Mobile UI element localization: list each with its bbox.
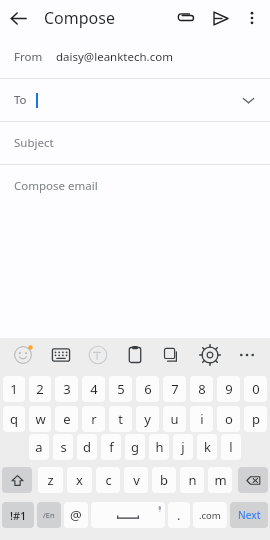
staticText: Subject <box>14 135 54 151</box>
button[interactable]: Shift <box>2 467 32 493</box>
button[interactable]: Expand recipients <box>236 88 260 112</box>
button[interactable]: q <box>3 406 25 432</box>
button[interactable]: Compose email <box>0 165 270 207</box>
button[interactable]: j <box>173 434 193 460</box>
button[interactable]: y <box>136 406 159 432</box>
staticText: g <box>131 438 139 456</box>
button[interactable]: c <box>96 467 120 493</box>
button[interactable]: h <box>149 434 169 460</box>
staticText: s <box>60 438 67 456</box>
button[interactable]: 9 <box>217 376 240 402</box>
button[interactable]: k <box>197 434 217 460</box>
button[interactable]: n <box>180 467 204 493</box>
staticText: 4 <box>90 380 98 398</box>
staticText: .com <box>199 509 221 522</box>
button[interactable]: .com <box>193 502 227 528</box>
staticText: u <box>170 410 179 428</box>
button[interactable]: v <box>124 467 148 493</box>
button[interactable]: 7 <box>163 376 186 402</box>
staticText: 1 <box>10 380 18 398</box>
button[interactable]: 6 <box>136 376 159 402</box>
button[interactable]: g <box>125 434 145 460</box>
staticText: v <box>133 471 140 489</box>
button[interactable]: m <box>208 467 232 493</box>
staticText: 7 <box>171 380 179 398</box>
staticText: y <box>144 410 151 428</box>
staticText: 2 <box>36 380 44 398</box>
staticText: c <box>105 471 112 489</box>
button[interactable]: Subject <box>0 122 270 164</box>
button[interactable]: 3 <box>55 376 78 402</box>
staticText: p <box>252 410 260 428</box>
button[interactable]: t <box>109 406 132 432</box>
staticText: 9 <box>225 380 233 398</box>
staticText: 8 <box>198 380 206 398</box>
staticText: From <box>14 49 43 65</box>
button[interactable]: e <box>55 406 78 432</box>
staticText: w <box>35 410 46 428</box>
button[interactable]: . <box>168 502 190 528</box>
staticText: i <box>200 410 204 428</box>
button[interactable]: Handwriting <box>84 341 112 369</box>
button[interactable]: u <box>163 406 186 432</box>
staticText: /En <box>43 510 55 520</box>
button[interactable]: o <box>217 406 240 432</box>
button[interactable]: a <box>29 434 49 460</box>
button[interactable]: 8 <box>190 376 213 402</box>
button[interactable]: Change language <box>37 502 61 528</box>
button[interactable]: From <box>0 36 270 78</box>
button[interactable]: Settings <box>196 341 224 369</box>
staticText: z <box>47 471 54 489</box>
button[interactable]: Backspace <box>238 467 268 493</box>
button[interactable]: Clipboard <box>121 341 149 369</box>
button[interactable]: More <box>233 341 261 369</box>
button[interactable]: d <box>77 434 97 460</box>
staticText: 3 <box>63 380 71 398</box>
staticText: f <box>109 438 114 456</box>
button[interactable]: b <box>152 467 176 493</box>
button[interactable]: p <box>244 406 267 432</box>
button[interactable]: z <box>38 467 63 493</box>
staticText: daisy@leanktech.com <box>56 49 173 65</box>
button[interactable]: x <box>67 467 92 493</box>
button[interactable]: f <box>101 434 121 460</box>
staticText: . <box>177 506 181 524</box>
staticText: m <box>214 471 227 489</box>
staticText: n <box>188 471 197 489</box>
button[interactable]: More options <box>237 3 267 33</box>
staticText: o <box>225 410 233 428</box>
button[interactable]: !#1 <box>2 502 34 528</box>
staticText: Compose email <box>14 178 98 194</box>
button[interactable]: i <box>190 406 213 432</box>
staticText: Next <box>238 508 261 522</box>
button[interactable]: Keyboard <box>47 341 75 369</box>
staticText: To <box>14 92 27 108</box>
button[interactable]: Stickers <box>158 341 186 369</box>
button[interactable]: 1 <box>3 376 25 402</box>
button[interactable]: w <box>29 406 51 432</box>
staticText: b <box>160 471 168 489</box>
button[interactable]: 2 <box>29 376 51 402</box>
button[interactable]: @ <box>64 502 88 528</box>
staticText: r <box>91 410 97 428</box>
button[interactable]: s <box>53 434 73 460</box>
staticText: x <box>76 471 83 489</box>
button[interactable]: Attach file <box>169 1 203 35</box>
button[interactable]: Emoji <box>9 341 37 369</box>
staticText: e <box>63 410 71 428</box>
staticText: l <box>229 438 233 456</box>
button[interactable]: 5 <box>109 376 132 402</box>
button[interactable]: Send <box>203 1 237 35</box>
button[interactable]: l <box>221 434 241 460</box>
button[interactable]: Back <box>0 0 36 36</box>
button[interactable]: To <box>0 79 270 121</box>
button[interactable]: 0 <box>244 376 267 402</box>
staticText: k <box>204 438 211 456</box>
staticText: Compose <box>44 7 115 29</box>
staticText: 6 <box>144 380 152 398</box>
button[interactable]: r <box>82 406 105 432</box>
button[interactable]: 4 <box>82 376 105 402</box>
staticText: 5 <box>117 380 125 398</box>
button[interactable]: Space <box>91 502 165 528</box>
button[interactable]: Next <box>230 502 268 528</box>
